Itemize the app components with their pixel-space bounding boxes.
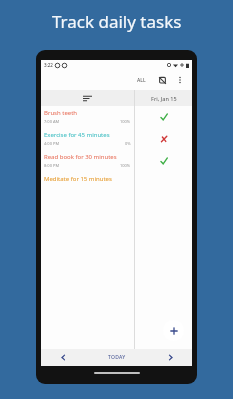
staticText: Meditate for 15 minutes <box>44 175 112 183</box>
staticText: Fri, Jan 15 <box>151 95 177 102</box>
staticText: Read book for 30 minutes <box>44 153 117 161</box>
staticText: Track daily tasks <box>52 10 182 33</box>
button[interactable]: TODAY <box>86 349 148 366</box>
staticText: ALL <box>137 77 146 84</box>
staticText: Brush teeth <box>44 109 78 117</box>
staticText: 0% <box>125 141 131 146</box>
staticText: 100% <box>120 163 131 168</box>
button[interactable]: Completed <box>135 150 192 172</box>
button[interactable]: Notifications off <box>155 73 169 87</box>
staticText: 7:00 AM <box>44 119 60 124</box>
button[interactable]: Add task <box>163 320 184 341</box>
button[interactable]: Previous day <box>41 349 86 366</box>
button[interactable]: Not completed <box>135 128 192 150</box>
staticText: 8:00 PM <box>44 163 60 168</box>
button[interactable]: Meditate for 15 minutes <box>41 172 134 194</box>
button[interactable]: Brush teeth <box>41 106 134 128</box>
staticText: TODAY <box>108 354 126 361</box>
button[interactable]: Sort <box>41 90 134 106</box>
button[interactable]: More options <box>173 73 187 87</box>
button[interactable]: Exercise for 45 minutes <box>41 128 134 150</box>
button[interactable]: Completed <box>135 106 192 128</box>
staticText: 100% <box>120 119 131 124</box>
button[interactable]: Read book for 30 minutes <box>41 150 134 172</box>
staticText: Exercise for 45 minutes <box>44 131 110 139</box>
button[interactable]: Next day <box>148 349 192 366</box>
staticText: 4:00 PM <box>44 141 60 146</box>
staticText: 3:22 <box>44 62 53 68</box>
button[interactable]: ALL <box>134 74 149 87</box>
